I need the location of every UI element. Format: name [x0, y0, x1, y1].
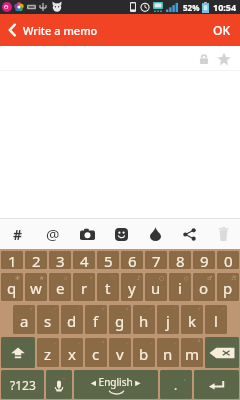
- button[interactable]: 3: [49, 251, 71, 269]
- button[interactable]: Voice input: [46, 370, 72, 399]
- staticText: n: [163, 344, 173, 364]
- button[interactable]: a: [13, 305, 35, 334]
- staticText: 8: [176, 251, 185, 269]
- staticText: 10:54: [213, 1, 237, 13]
- staticText: a: [20, 311, 29, 331]
- button[interactable]: Enter: [194, 370, 239, 399]
- button[interactable]: k: [181, 305, 203, 334]
- button[interactable]: o: [193, 273, 215, 301]
- staticText: ◂ English ▸: [91, 375, 141, 389]
- button[interactable]: 7: [145, 251, 167, 269]
- staticText: ✻: [15, 274, 21, 281]
- staticText: z: [44, 344, 52, 364]
- button[interactable]: Delete: [206, 219, 240, 249]
- button[interactable]: 8: [169, 251, 191, 269]
- button[interactable]: 6: [121, 251, 143, 269]
- staticText: .: [174, 377, 178, 393]
- staticText: ☆: [63, 274, 69, 281]
- button[interactable]: h: [133, 305, 155, 334]
- button[interactable]: x: [61, 338, 83, 367]
- button[interactable]: Hashtag: [0, 219, 35, 249]
- button[interactable]: n: [157, 338, 179, 367]
- staticText: ·: [79, 339, 81, 347]
- staticText: u: [151, 278, 161, 298]
- staticText: ♬: [231, 274, 237, 281]
- button[interactable]: Ink: [138, 219, 172, 249]
- button[interactable]: t: [97, 273, 119, 301]
- staticText: e: [56, 278, 65, 298]
- button[interactable]: m: [181, 338, 203, 367]
- button[interactable]: y: [121, 273, 143, 301]
- staticText: m: [185, 344, 200, 364]
- staticText: s: [44, 311, 52, 331]
- staticText: ◇: [184, 274, 189, 281]
- button[interactable]: Favourite: [215, 50, 232, 67]
- button[interactable]: u: [145, 273, 167, 301]
- staticText: ○: [159, 274, 165, 281]
- button[interactable]: z: [37, 338, 59, 367]
- button[interactable]: l: [205, 305, 227, 334]
- button[interactable]: e: [49, 273, 71, 301]
- staticText: v: [116, 344, 124, 364]
- staticText: ′: [151, 306, 153, 314]
- staticText: ·: [127, 339, 129, 347]
- button[interactable]: 9: [193, 251, 215, 269]
- staticText: °: [102, 339, 105, 347]
- button[interactable]: b: [133, 338, 155, 367]
- staticText: ″: [30, 306, 33, 314]
- button[interactable]: 4: [73, 251, 95, 269]
- button[interactable]: 2: [25, 251, 47, 269]
- staticText: 3: [56, 251, 65, 269]
- button[interactable]: 1: [1, 251, 23, 269]
- staticText: i: [178, 278, 182, 298]
- button[interactable]: g: [109, 305, 131, 334]
- button[interactable]: r: [73, 273, 95, 301]
- staticText: c: [92, 344, 100, 364]
- button[interactable]: f: [85, 305, 107, 334]
- staticText: 1: [8, 251, 17, 269]
- button[interactable]: Camera: [70, 219, 104, 249]
- button[interactable]: Write a memo: [0, 14, 108, 46]
- button[interactable]: ?123: [1, 370, 44, 399]
- staticText: 2: [32, 251, 41, 269]
- staticText: f: [93, 311, 99, 331]
- button[interactable]: OK: [203, 14, 240, 46]
- button[interactable]: 0: [217, 251, 239, 269]
- staticText: 5: [104, 251, 113, 269]
- button[interactable]: c: [85, 338, 107, 367]
- button[interactable]: p: [217, 273, 239, 301]
- staticText: d: [67, 311, 77, 331]
- staticText: ·: [151, 339, 153, 347]
- button[interactable]: .: [160, 370, 192, 399]
- staticText: •: [90, 274, 93, 282]
- button[interactable]: Backspace: [205, 337, 239, 368]
- button[interactable]: i: [169, 273, 191, 301]
- button[interactable]: 5: [97, 251, 119, 269]
- staticText: ♡: [111, 274, 117, 281]
- staticText: ·: [55, 339, 57, 347]
- staticText: h: [139, 311, 149, 331]
- button[interactable]: v: [109, 338, 131, 367]
- button[interactable]: d: [61, 305, 83, 334]
- staticText: k: [188, 311, 197, 331]
- staticText: 0: [224, 251, 233, 269]
- button[interactable]: ◂ English ▸: [74, 370, 158, 399]
- staticText: ♪: [137, 274, 141, 281]
- button[interactable]: Lock memo: [195, 50, 212, 67]
- staticText: ²: [198, 339, 201, 347]
- staticText: l: [214, 311, 218, 331]
- button[interactable]: s: [37, 305, 59, 334]
- button[interactable]: q: [1, 273, 23, 301]
- staticText: j: [166, 311, 170, 331]
- staticText: Write a memo: [23, 23, 98, 38]
- staticText: ,: [184, 373, 186, 383]
- button[interactable]: Shift: [1, 337, 35, 368]
- button[interactable]: Share: [172, 219, 206, 249]
- button[interactable]: Mention: [35, 219, 70, 249]
- button[interactable]: j: [157, 305, 179, 334]
- button[interactable]: Emoji: [104, 219, 138, 249]
- staticText: #: [13, 225, 23, 244]
- button[interactable]: w: [25, 273, 47, 301]
- staticText: t: [105, 278, 111, 298]
